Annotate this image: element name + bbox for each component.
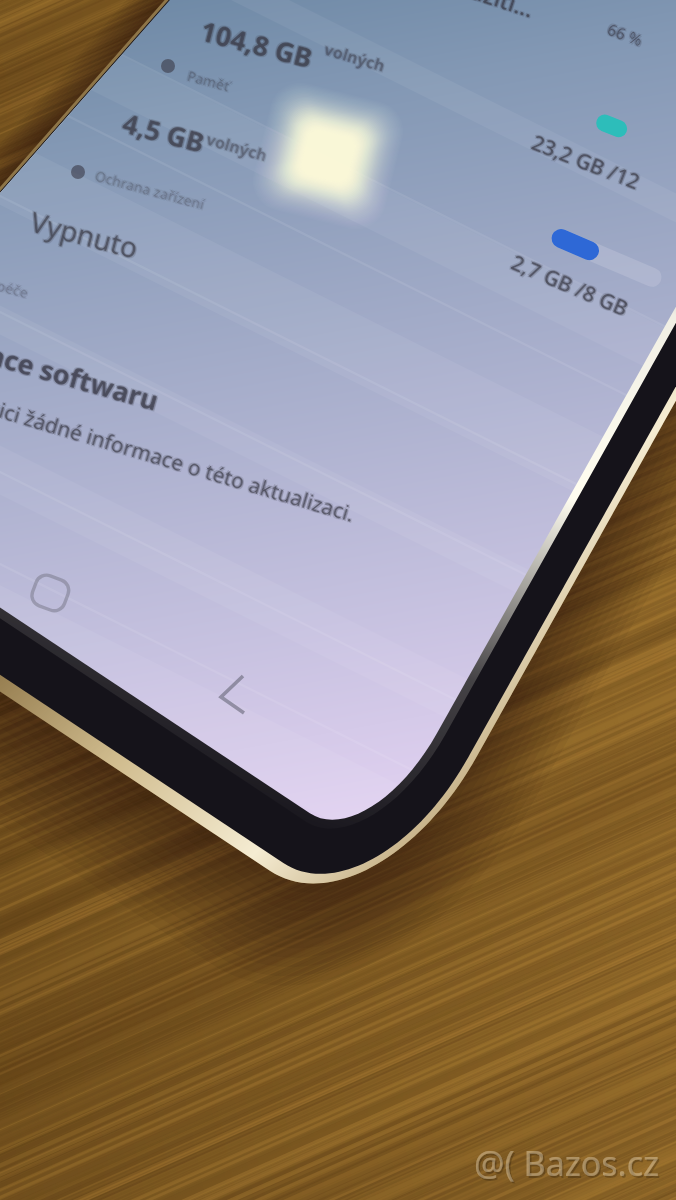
button[interactable] <box>0 0 676 1200</box>
